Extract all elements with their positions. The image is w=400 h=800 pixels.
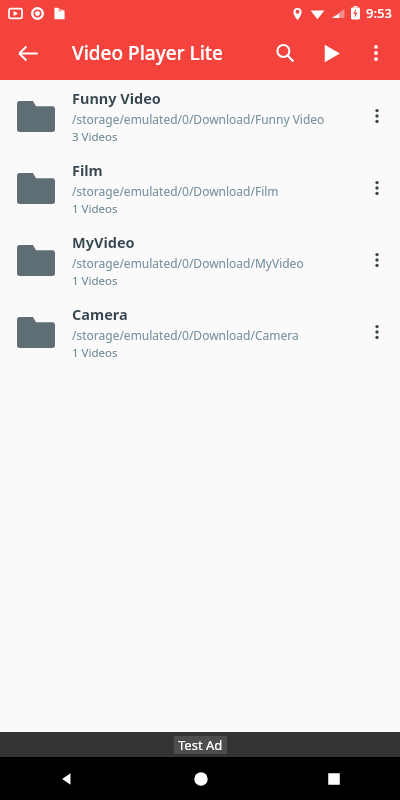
button[interactable]: Folder options xyxy=(354,80,400,152)
button[interactable]: Film xyxy=(0,152,400,224)
staticText: Funny Video xyxy=(72,88,161,108)
button[interactable]: Back xyxy=(6,31,50,75)
staticText: Camera xyxy=(72,304,128,324)
staticText: 9:53 xyxy=(366,4,392,22)
staticText: /storage/emulated/0/Download/Funny Video xyxy=(72,111,325,127)
button[interactable]: Folder options xyxy=(354,296,400,368)
staticText: 3 Videos xyxy=(72,129,118,145)
button[interactable]: Folder options xyxy=(354,152,400,224)
staticText: /storage/emulated/0/Download/Camera xyxy=(72,327,299,343)
staticText: /storage/emulated/0/Download/MyVideo xyxy=(72,255,304,271)
button[interactable]: Back xyxy=(0,757,134,800)
button[interactable]: Camera xyxy=(0,296,400,368)
button[interactable]: Play xyxy=(308,30,354,76)
button[interactable]: Test Ad xyxy=(0,732,400,757)
button[interactable]: Folder options xyxy=(354,224,400,296)
staticText: Video Player Lite xyxy=(72,40,224,66)
button[interactable]: Funny Video xyxy=(0,80,400,152)
button[interactable]: MyVideo xyxy=(0,224,400,296)
staticText: MyVideo xyxy=(72,232,135,252)
button[interactable]: Home xyxy=(134,757,267,800)
button[interactable]: Search xyxy=(262,30,308,76)
staticText: Test Ad xyxy=(178,736,223,754)
button[interactable]: More options xyxy=(354,31,398,75)
button[interactable]: Recents xyxy=(267,757,400,800)
staticText: Film xyxy=(72,160,103,180)
staticText: 1 Videos xyxy=(72,345,118,361)
staticText: /storage/emulated/0/Download/Film xyxy=(72,183,279,199)
staticText: 1 Videos xyxy=(72,273,118,289)
staticText: 1 Videos xyxy=(72,201,118,217)
